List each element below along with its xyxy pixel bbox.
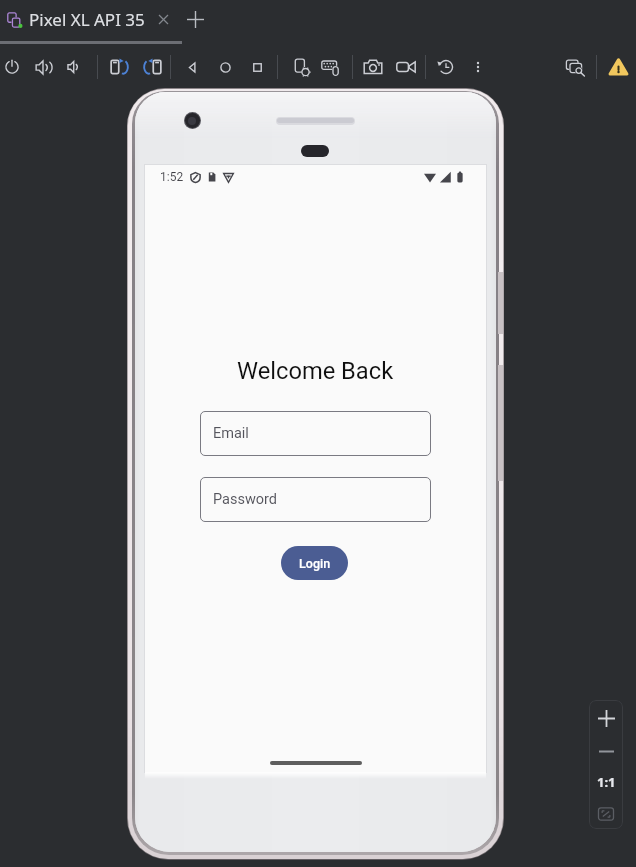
- button[interactable]: Close tab: [152, 8, 174, 30]
- button[interactable]: Pixel XL API 35: [7, 3, 145, 36]
- staticText: Login: [299, 556, 331, 571]
- button[interactable]: Home: [209, 51, 241, 83]
- button[interactable]: Rotate right: [136, 51, 168, 83]
- button[interactable]: Actual size: [589, 766, 623, 798]
- button[interactable]: Rotate left: [103, 51, 135, 83]
- staticText: Password: [213, 491, 278, 508]
- button[interactable]: Record screen: [390, 51, 422, 83]
- staticText: 1:1: [597, 773, 616, 791]
- button[interactable]: Power: [0, 51, 28, 83]
- staticText: 1:52: [160, 170, 184, 184]
- button[interactable]: Fit to screen: [589, 798, 623, 829]
- staticText: Pixel XL API 35: [29, 8, 145, 31]
- button[interactable]: History: [430, 51, 462, 83]
- button[interactable]: Device settings: [286, 51, 318, 83]
- button[interactable]: Overview: [241, 51, 273, 83]
- button[interactable]: More actions: [462, 51, 494, 83]
- button[interactable]: Back: [176, 51, 208, 83]
- button[interactable]: New tab: [181, 5, 210, 34]
- button[interactable]: Warnings: [602, 51, 634, 83]
- button[interactable]: Login: [281, 546, 348, 580]
- button[interactable]: Zoom out: [589, 736, 623, 766]
- button[interactable]: Volume up: [28, 51, 60, 83]
- button[interactable]: Volume down: [59, 51, 91, 83]
- button[interactable]: Zoom in: [589, 700, 623, 736]
- button[interactable]: Keyboard: [315, 51, 347, 83]
- staticText: Welcome Back: [237, 357, 394, 385]
- button[interactable]: Password: [200, 477, 431, 522]
- button[interactable]: Email: [200, 411, 431, 456]
- button[interactable]: Screenshot: [357, 51, 389, 83]
- button[interactable]: Inspect layout: [560, 51, 592, 83]
- staticText: Email: [213, 425, 249, 442]
